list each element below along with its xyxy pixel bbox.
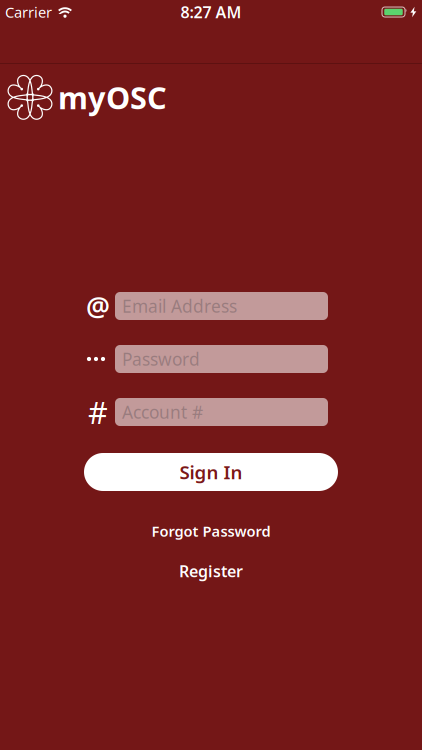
button[interactable]: Sign In	[84, 453, 338, 491]
staticText: Email Address	[122, 294, 237, 317]
staticText: Account #	[122, 400, 203, 423]
staticText: Forgot Password	[151, 521, 270, 541]
staticText: 8:27 AM	[180, 1, 241, 23]
button[interactable]: Register	[179, 561, 243, 581]
staticText: @	[86, 288, 110, 324]
staticText: Sign In	[179, 460, 242, 484]
button[interactable]: Forgot Password	[151, 521, 270, 541]
staticText: Carrier	[5, 2, 52, 22]
staticText: Password	[122, 347, 200, 370]
staticText: #	[88, 392, 108, 432]
staticText: myOSC	[58, 77, 167, 118]
staticText: Register	[179, 560, 243, 582]
